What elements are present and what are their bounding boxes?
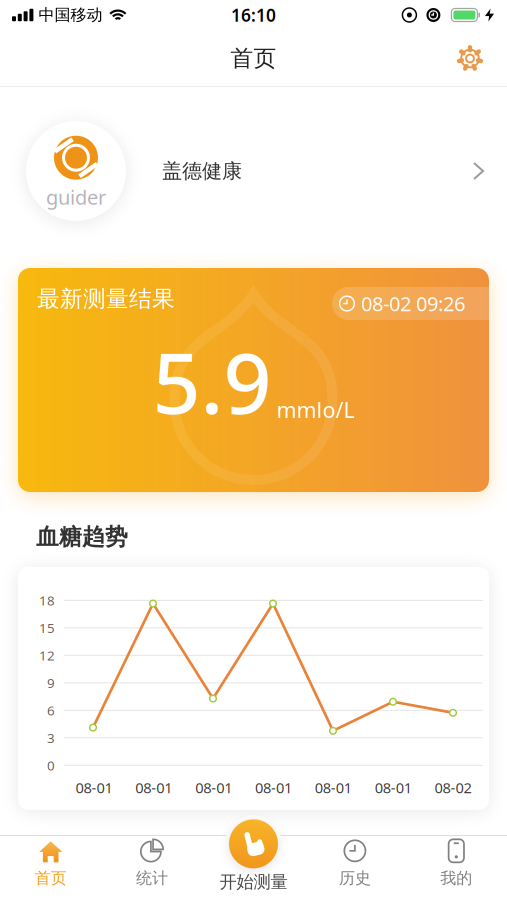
staticText: 9 xyxy=(47,674,55,692)
button[interactable]: 统计 xyxy=(101,822,203,900)
staticText: 首页 xyxy=(230,45,276,72)
staticText: 15 xyxy=(39,619,55,637)
staticText: 08-01 xyxy=(195,778,232,797)
button[interactable]: 首页 xyxy=(0,822,101,900)
staticText: 盖德健康 xyxy=(162,159,242,183)
staticText: 08-02 xyxy=(435,778,472,797)
staticText: 08-01 xyxy=(135,778,172,797)
staticText: 08-01 xyxy=(255,778,292,797)
staticText: 血糖趋势 xyxy=(36,523,128,551)
staticText: 12 xyxy=(39,646,55,664)
staticText: 5.9 xyxy=(152,325,271,437)
button[interactable]: guider xyxy=(0,87,507,268)
staticText: 中国移动 xyxy=(38,5,102,25)
staticText: 0 xyxy=(47,756,55,774)
staticText: 3 xyxy=(47,729,55,747)
staticText: 最新测量结果 xyxy=(37,285,175,313)
staticText: 历史 xyxy=(339,868,371,888)
staticText: 08-01 xyxy=(75,778,112,797)
staticText: 统计 xyxy=(136,868,168,888)
button[interactable]: 历史 xyxy=(304,822,406,900)
staticText: 08-01 xyxy=(315,778,352,797)
button[interactable]: 开始测量 xyxy=(203,819,304,900)
staticText: 首页 xyxy=(35,868,67,888)
staticText: 开始测量 xyxy=(219,871,287,893)
staticText: mmlo/L xyxy=(276,396,354,424)
staticText: 16:10 xyxy=(231,3,276,26)
staticText: 08-02 09:26 xyxy=(361,290,465,317)
staticText: 08-01 xyxy=(375,778,412,797)
staticText: 我的 xyxy=(440,868,472,888)
button[interactable]: Settings xyxy=(449,37,491,79)
button[interactable]: 我的 xyxy=(406,822,507,900)
staticText: 18 xyxy=(39,591,55,609)
staticText: guider xyxy=(46,184,106,210)
staticText: 6 xyxy=(47,701,55,719)
